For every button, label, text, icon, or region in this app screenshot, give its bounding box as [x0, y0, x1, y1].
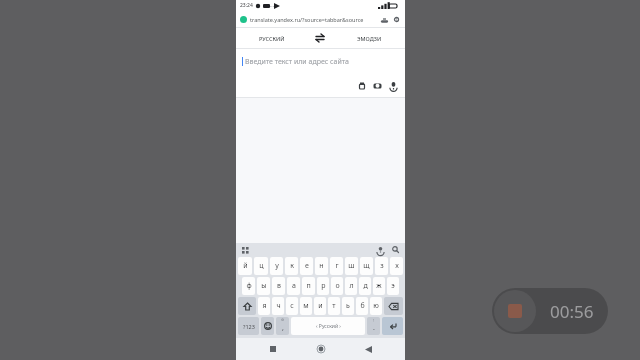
staticText: ф [246, 281, 252, 291]
staticText: 1 [395, 17, 398, 23]
button[interactable]: э [387, 277, 399, 295]
staticText: р [321, 281, 326, 291]
button[interactable]: ЭМОДЗИ [333, 28, 405, 48]
staticText: г [335, 261, 339, 271]
staticText: э [391, 281, 395, 291]
button[interactable]: Shift [238, 297, 256, 315]
button[interactable]: РУССКИЙ [236, 28, 307, 48]
staticText: ц [259, 261, 264, 271]
button[interactable]: Paste from clipboard [355, 79, 368, 92]
button[interactable]: в [272, 277, 285, 295]
button[interactable]: е [300, 257, 313, 275]
button[interactable]: Swap languages [307, 28, 333, 48]
button[interactable]: Tabs [392, 15, 401, 24]
staticText: а [292, 281, 296, 291]
other: Stop recording [494, 290, 536, 332]
staticText: л [349, 281, 354, 291]
button[interactable]: п [302, 277, 315, 295]
button[interactable]: ! [367, 317, 380, 335]
staticText: translate.yandex.ru/?source=tabbar&sourc… [250, 16, 364, 23]
staticText: м [303, 301, 309, 311]
staticText: к [290, 261, 294, 271]
button[interactable]: н [315, 257, 328, 275]
staticText: т [332, 301, 336, 311]
staticText: ‹ Русский › [316, 323, 341, 330]
button[interactable]: Backspace [384, 297, 403, 315]
button[interactable]: Recent apps [263, 339, 283, 359]
button[interactable]: х [390, 257, 403, 275]
staticText: н [319, 261, 324, 271]
staticText: е [305, 261, 309, 271]
staticText: . [373, 323, 375, 333]
button[interactable]: ы [257, 277, 270, 295]
staticText: с [290, 301, 294, 311]
button[interactable]: а [287, 277, 300, 295]
staticText: ы [261, 281, 267, 291]
button[interactable]: я [258, 297, 270, 315]
button[interactable]: ж [373, 277, 385, 295]
button[interactable]: Stop recording [492, 288, 608, 334]
button[interactable]: р [317, 277, 329, 295]
staticText: й [243, 261, 248, 271]
staticText: щ [363, 261, 370, 271]
staticText: п [306, 281, 311, 291]
staticText: ! [373, 318, 374, 323]
staticText: и [318, 301, 323, 311]
staticText: д [363, 281, 368, 291]
button[interactable]: о [331, 277, 343, 295]
button[interactable]: Voice input [387, 79, 400, 92]
button[interactable]: ‹ Русский › [291, 317, 365, 335]
staticText: у [275, 261, 279, 271]
button[interactable]: Camera translate [371, 79, 384, 92]
staticText: ... [270, 2, 275, 9]
staticText: 23:24 [240, 2, 253, 9]
staticText: ю [373, 301, 379, 311]
staticText: ь [346, 301, 350, 311]
staticText: ЭМОДЗИ [357, 35, 382, 42]
button[interactable]: с [286, 297, 298, 315]
staticText: , [282, 323, 284, 333]
button[interactable]: ?123 [238, 317, 259, 335]
staticText: я [262, 301, 267, 311]
staticText: х [395, 261, 399, 271]
button[interactable]: к [285, 257, 298, 275]
button[interactable]: т [328, 297, 340, 315]
button[interactable]: Downloads [380, 15, 389, 24]
staticText: ?123 [243, 323, 255, 330]
staticText: 00:56 [550, 300, 594, 323]
button[interactable]: д [359, 277, 371, 295]
button[interactable]: Site info [240, 16, 247, 23]
button[interactable]: Enter [382, 317, 403, 335]
staticText: Введите текст или адрес сайта [245, 57, 349, 67]
button[interactable]: Keyboard menu [240, 245, 249, 254]
staticText: в [277, 281, 281, 291]
staticText: ⚙ [281, 318, 285, 322]
button[interactable]: ь [342, 297, 354, 315]
button[interactable]: ч [272, 297, 284, 315]
button[interactable]: ф [242, 277, 255, 295]
staticText: ч [276, 301, 281, 311]
button[interactable]: и [314, 297, 326, 315]
button[interactable]: ц [254, 257, 268, 275]
staticText: о [335, 281, 340, 291]
button[interactable]: г [330, 257, 343, 275]
button[interactable]: м [300, 297, 312, 315]
button[interactable]: у [270, 257, 283, 275]
button[interactable]: Emoji [261, 317, 274, 335]
button[interactable]: ш [345, 257, 358, 275]
button[interactable]: Voice typing [375, 244, 386, 255]
button[interactable]: щ [360, 257, 373, 275]
staticText: б [360, 301, 365, 311]
staticText: ж [376, 281, 382, 291]
button[interactable]: з [375, 257, 388, 275]
button[interactable]: л [345, 277, 357, 295]
button[interactable]: ⚙ [276, 317, 289, 335]
button[interactable]: й [238, 257, 252, 275]
staticText: з [380, 261, 384, 271]
button[interactable]: Home [311, 339, 331, 359]
staticText: ш [348, 261, 355, 271]
button[interactable]: Back [358, 339, 378, 359]
button[interactable]: ю [370, 297, 382, 315]
button[interactable]: б [356, 297, 368, 315]
button[interactable]: Search [390, 244, 401, 255]
